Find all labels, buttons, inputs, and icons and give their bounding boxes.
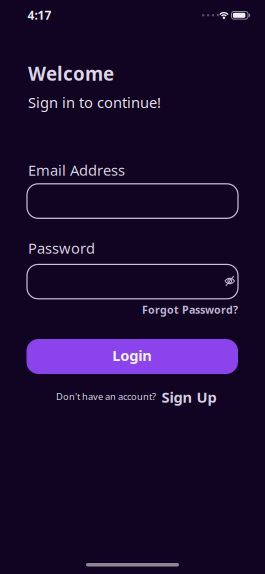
staticText: Forgot Password? — [142, 303, 238, 317]
staticText: Welcome — [28, 61, 114, 86]
button[interactable]: Forgot Password? — [142, 303, 238, 317]
staticText: Don't have an account? — [56, 390, 156, 403]
staticText: Password — [28, 238, 95, 258]
button[interactable]: Show password — [224, 275, 235, 287]
staticText: 4:17 — [27, 7, 51, 23]
staticText: Login — [112, 346, 152, 365]
button[interactable]: Sign Up — [161, 387, 216, 407]
staticText: Sign in to continue! — [28, 92, 161, 112]
staticText: Email Address — [28, 160, 125, 180]
staticText: Sign Up — [161, 387, 216, 407]
button[interactable]: Password — [27, 264, 238, 299]
button[interactable]: Login — [26, 339, 238, 374]
button[interactable]: Email Address — [27, 184, 238, 218]
